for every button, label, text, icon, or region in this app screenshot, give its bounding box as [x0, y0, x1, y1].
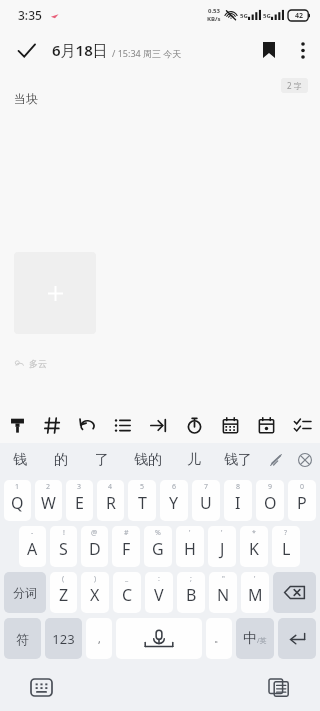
staticText: 2 字	[287, 80, 302, 91]
button[interactable]: ’	[176, 526, 204, 567]
staticText: ’	[254, 574, 256, 584]
button[interactable]: Attach	[262, 443, 290, 477]
staticText: H	[184, 538, 196, 560]
staticText: 钱	[13, 451, 27, 469]
button[interactable]: 3	[66, 480, 93, 521]
button[interactable]: Bullet list	[105, 407, 140, 443]
staticText: (	[62, 574, 65, 584]
button[interactable]: Checklist	[284, 407, 320, 443]
button[interactable]: 分词	[4, 572, 46, 613]
staticText: 5G	[263, 12, 271, 20]
button[interactable]: 1	[4, 480, 31, 521]
button[interactable]: )	[81, 572, 109, 613]
staticText: T	[138, 492, 147, 514]
staticText: *	[252, 528, 256, 538]
button[interactable]: 2	[35, 480, 62, 521]
button[interactable]: Calendar	[212, 407, 248, 443]
button[interactable]: Timer	[176, 407, 212, 443]
button[interactable]: Done	[0, 30, 52, 70]
button[interactable]: ’	[241, 572, 269, 613]
staticText: M	[248, 584, 263, 606]
button[interactable]: 的	[40, 443, 81, 477]
button[interactable]: Backspace	[273, 572, 316, 613]
button[interactable]: 了	[81, 443, 122, 477]
staticText: / 15:34 周三 今天	[112, 47, 182, 59]
staticText: 钱的	[134, 451, 162, 469]
staticText: F	[122, 538, 131, 560]
staticText: O	[264, 492, 277, 514]
button[interactable]: Close keyboard panel	[290, 443, 320, 477]
button[interactable]: 。	[206, 618, 232, 659]
staticText: Z	[59, 584, 69, 606]
staticText: L	[282, 538, 291, 560]
staticText: 0.53	[208, 7, 220, 15]
button[interactable]: Tag	[35, 407, 70, 443]
button[interactable]: ;	[177, 572, 205, 613]
button[interactable]: 123	[45, 618, 82, 659]
button[interactable]: (	[50, 572, 77, 613]
button[interactable]: 中	[236, 618, 274, 659]
button[interactable]: 儿	[174, 443, 213, 477]
staticText: 儿	[187, 451, 201, 469]
staticText: ’	[189, 528, 191, 538]
button[interactable]: %	[144, 526, 172, 567]
button[interactable]: Hide keyboard	[24, 670, 58, 704]
button[interactable]: Recent apps	[262, 670, 296, 704]
button[interactable]: @	[81, 526, 108, 567]
staticText: A	[27, 538, 38, 560]
button[interactable]: 2 字	[281, 78, 308, 93]
button[interactable]: 5	[128, 480, 156, 521]
staticText: W	[41, 492, 56, 514]
button[interactable]: Indent	[140, 407, 176, 443]
staticText: 6月18日	[52, 40, 108, 60]
button[interactable]: *	[240, 526, 268, 567]
button[interactable]: #	[112, 526, 140, 567]
button[interactable]: 9	[256, 480, 284, 521]
staticText: R	[106, 492, 116, 514]
staticText: 9	[268, 482, 273, 492]
button[interactable]: Bookmark	[252, 30, 286, 70]
staticText: 4	[108, 482, 113, 492]
staticText: 当块	[14, 91, 38, 106]
button[interactable]: _	[113, 572, 141, 613]
staticText: 。	[214, 632, 224, 645]
staticText: ,	[98, 632, 101, 646]
staticText: %	[155, 528, 161, 538]
button[interactable]: Enter	[278, 618, 316, 659]
staticText: S	[59, 538, 68, 560]
staticText: 123	[52, 630, 75, 648]
button[interactable]: 0	[288, 480, 316, 521]
button[interactable]: "	[209, 572, 237, 613]
button[interactable]: Format	[0, 407, 35, 443]
button[interactable]: ’	[208, 526, 236, 567]
staticText: 3:35	[18, 7, 42, 23]
button[interactable]: Undo	[70, 407, 105, 443]
button[interactable]: :	[145, 572, 173, 613]
staticText: 42	[295, 11, 304, 21]
staticText: K	[249, 538, 259, 560]
staticText: 多云	[29, 358, 47, 369]
button[interactable]: More options	[286, 30, 320, 70]
button[interactable]: Event	[248, 407, 284, 443]
staticText: 8	[236, 482, 241, 492]
button[interactable]: ,	[86, 618, 112, 659]
staticText: -	[31, 528, 34, 538]
button[interactable]: 钱了	[213, 443, 262, 477]
staticText: /英	[257, 636, 267, 646]
button[interactable]: !	[50, 526, 77, 567]
button[interactable]: ?	[272, 526, 300, 567]
staticText: 2	[46, 482, 51, 492]
staticText: !	[63, 528, 65, 538]
button[interactable]: 钱	[0, 443, 40, 477]
staticText: 中	[243, 630, 257, 648]
staticText: 钱了	[224, 451, 252, 469]
button[interactable]: 钱的	[122, 443, 174, 477]
button[interactable]: -	[19, 526, 46, 567]
button[interactable]: 4	[97, 480, 124, 521]
button[interactable]: 7	[192, 480, 220, 521]
button[interactable]: Space, voice input	[116, 618, 202, 659]
button[interactable]: 符	[4, 618, 41, 659]
button[interactable]: 8	[224, 480, 252, 521]
button[interactable]: 6	[160, 480, 188, 521]
